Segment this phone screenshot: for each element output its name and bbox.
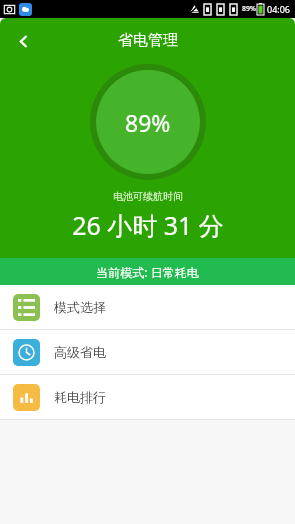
staticText: 耗电排行 [54, 389, 106, 405]
staticText: 04:06 [267, 3, 291, 15]
staticText: 省电管理 [118, 31, 178, 50]
staticText: 当前模式: 日常耗电 [96, 264, 199, 280]
staticText: 电池可续航时间 [113, 190, 183, 203]
button[interactable]: 当前模式: 日常耗电 [0, 258, 295, 285]
staticText: 89% [125, 107, 171, 138]
button[interactable]: 高级省电 [0, 330, 295, 374]
button[interactable]: Back [6, 24, 40, 58]
staticText: 模式选择 [54, 299, 106, 315]
staticText: 高级省电 [54, 344, 106, 360]
staticText: 26 小时 31 分 [72, 208, 224, 242]
button[interactable]: 耗电排行 [0, 375, 295, 419]
button[interactable]: 模式选择 [0, 285, 295, 329]
staticText: 89% [242, 4, 256, 14]
